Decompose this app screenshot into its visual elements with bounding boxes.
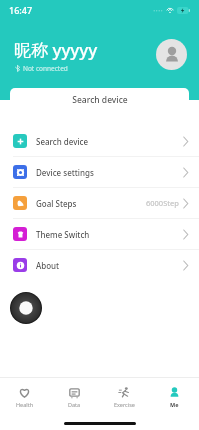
staticText: Not connected — [23, 64, 68, 73]
staticText: 昵称 yyyyy — [14, 38, 98, 61]
staticText: Data — [68, 401, 81, 408]
button[interactable]: Exercise — [99, 378, 149, 416]
staticText: Exercise — [114, 401, 135, 408]
staticText: Health — [16, 401, 34, 408]
staticText: 16:47 — [9, 4, 33, 16]
button[interactable]: Goal Steps — [0, 188, 199, 218]
button[interactable]: Search device — [10, 88, 189, 112]
button[interactable]: Loading indicator — [10, 292, 42, 324]
button[interactable]: Search device — [0, 126, 199, 156]
staticText: Me — [170, 401, 179, 408]
staticText: About — [36, 260, 60, 271]
button[interactable]: Data — [49, 378, 99, 416]
button[interactable]: Profile avatar — [156, 39, 187, 70]
staticText: 6000Step — [146, 198, 179, 208]
button[interactable]: Theme Switch — [0, 219, 199, 249]
button[interactable]: About — [0, 250, 199, 280]
staticText: Theme Switch — [36, 229, 90, 240]
staticText: Search device — [36, 136, 89, 147]
staticText: Device settings — [36, 167, 94, 178]
button[interactable]: Health — [0, 378, 49, 416]
staticText: Search device — [72, 94, 128, 106]
button[interactable]: Device settings — [0, 157, 199, 187]
staticText: Goal Steps — [36, 198, 77, 209]
button[interactable]: Me — [149, 378, 199, 416]
